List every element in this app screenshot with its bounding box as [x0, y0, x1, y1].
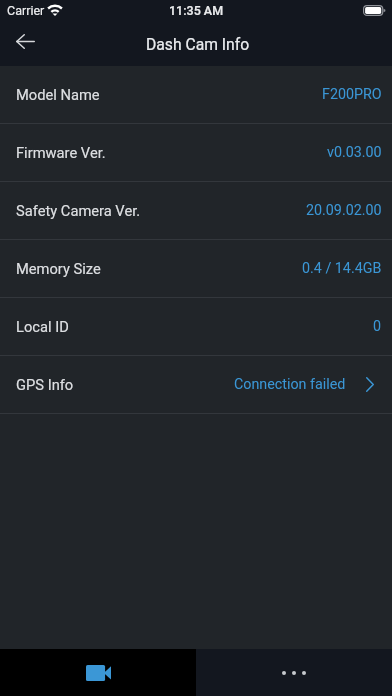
staticText: 0.4 / 14.4GB — [302, 260, 382, 277]
staticText: Memory Size — [16, 260, 101, 277]
button[interactable]: Model Name — [0, 66, 392, 123]
staticText: Model Name — [16, 86, 100, 103]
staticText: GPS Info — [16, 376, 74, 393]
button[interactable]: Record — [0, 649, 196, 696]
button[interactable]: More — [196, 649, 392, 696]
staticText: Carrier — [7, 3, 45, 18]
staticText: Firmware Ver. — [16, 144, 106, 161]
staticText: v0.03.00 — [327, 144, 382, 161]
staticText: Dash Cam Info — [146, 35, 250, 53]
staticText: 0 — [373, 318, 382, 335]
button[interactable]: GPS Info — [0, 356, 392, 413]
button[interactable]: Local ID — [0, 298, 392, 355]
staticText: 20.09.02.00 — [306, 202, 382, 219]
button[interactable]: Firmware Ver. — [0, 124, 392, 181]
button[interactable]: Back — [0, 22, 48, 66]
staticText: 11:35 AM — [169, 3, 224, 18]
button[interactable]: Safety Camera Ver. — [0, 182, 392, 239]
staticText: Local ID — [16, 318, 69, 335]
staticText: F200PRO — [322, 86, 382, 103]
button[interactable]: Memory Size — [0, 240, 392, 297]
staticText: Connection failed — [234, 376, 346, 393]
staticText: Safety Camera Ver. — [16, 202, 141, 219]
